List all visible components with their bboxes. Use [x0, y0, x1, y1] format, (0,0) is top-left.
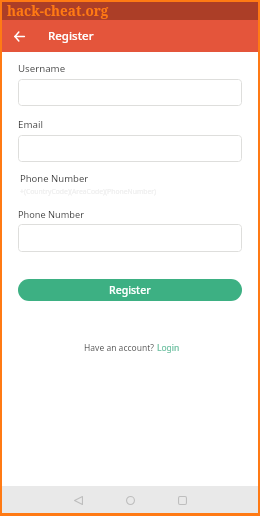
button[interactable]	[18, 135, 242, 162]
staticText: Username	[18, 62, 66, 75]
button[interactable]: Home	[120, 490, 140, 510]
button[interactable]: Back	[68, 490, 88, 510]
staticText: Email	[18, 118, 43, 131]
staticText: Register	[48, 28, 94, 44]
staticText: hack-cheat.org	[7, 2, 109, 20]
button[interactable]	[18, 224, 242, 252]
button[interactable]: Login	[157, 342, 180, 354]
staticText: Phone Number	[18, 208, 84, 221]
staticText: Register	[109, 283, 151, 297]
button[interactable]	[18, 79, 242, 106]
button[interactable]: Register	[18, 279, 242, 301]
button[interactable]: Back	[7, 24, 31, 48]
staticText: Phone Number	[20, 172, 89, 185]
staticText: +(CountryCode)(AreaCode)(PhoneNumber)	[20, 187, 157, 196]
staticText: Have an account?	[84, 342, 157, 354]
button[interactable]: Recent apps	[172, 490, 192, 510]
